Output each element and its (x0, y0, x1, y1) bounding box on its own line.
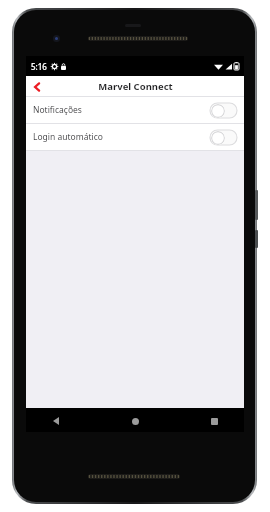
button[interactable]: Login automático (26, 124, 244, 150)
staticText: Notificações (33, 104, 210, 116)
button[interactable]: Home (127, 413, 143, 429)
staticText: 5:16 (31, 61, 47, 72)
button[interactable]: Notificações (26, 97, 244, 123)
staticText: Marvel Connect (98, 80, 173, 93)
button[interactable]: Toggle (210, 103, 237, 118)
button[interactable]: Back (26, 76, 48, 97)
button[interactable]: Back (48, 413, 64, 429)
staticText: Login automático (33, 131, 210, 143)
button[interactable]: Recent apps (206, 413, 222, 429)
button[interactable]: Toggle (210, 130, 237, 145)
